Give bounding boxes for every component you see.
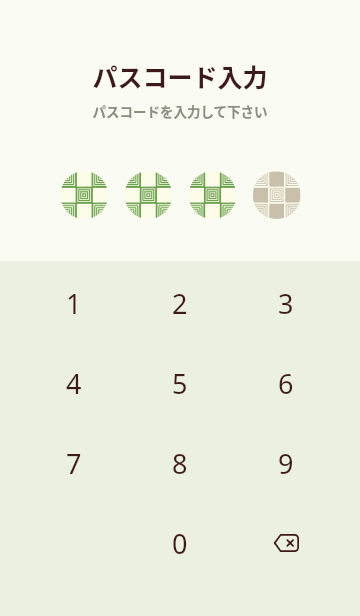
staticText: 1 [66,285,82,322]
button[interactable]: 5 [127,343,233,423]
staticText: 8 [172,445,188,482]
button[interactable]: 4 [21,343,127,423]
staticText: 5 [172,365,188,402]
staticText: パスコードを入力して下さい [92,101,268,121]
button[interactable]: 8 [127,423,233,503]
staticText: パスコード入力 [92,58,268,94]
staticText: 4 [66,365,82,402]
staticText: 0 [172,525,188,562]
button[interactable]: 6 [233,343,339,423]
staticText: 2 [172,285,188,322]
button[interactable]: 9 [233,423,339,503]
button[interactable]: 2 [127,263,233,343]
staticText: 6 [278,365,294,402]
staticText: 7 [66,445,82,482]
staticText: 3 [278,285,294,322]
button[interactable]: Backspace [233,503,339,583]
button[interactable]: 1 [21,263,127,343]
button[interactable]: 0 [127,503,233,583]
staticText: 9 [278,445,294,482]
button[interactable]: 7 [21,423,127,503]
button[interactable]: 3 [233,263,339,343]
